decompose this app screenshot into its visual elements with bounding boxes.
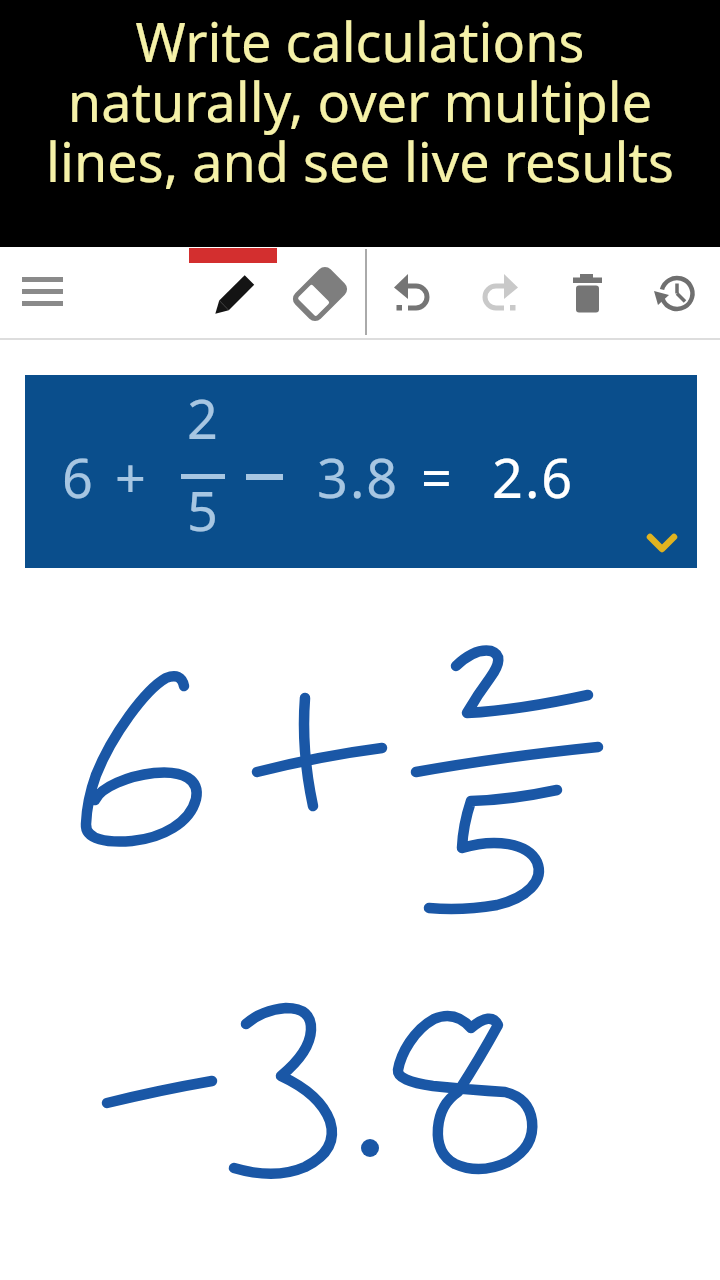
- staticText: 5: [187, 473, 220, 547]
- staticText: +: [115, 440, 148, 514]
- button[interactable]: [203, 263, 263, 323]
- staticText: =: [421, 440, 454, 514]
- button[interactable]: [647, 263, 707, 323]
- staticText: 2: [187, 381, 220, 455]
- button[interactable]: [14, 263, 72, 323]
- button[interactable]: [645, 530, 691, 560]
- button[interactable]: [290, 263, 350, 323]
- staticText: 6: [62, 440, 95, 514]
- staticText: 2.6: [492, 440, 575, 514]
- button[interactable]: 6: [25, 375, 697, 568]
- staticText: Write calculations naturally, over multi…: [46, 4, 674, 198]
- button[interactable]: [557, 263, 617, 323]
- button[interactable]: [382, 263, 442, 323]
- button[interactable]: [470, 263, 530, 323]
- staticText: 3.8: [317, 440, 400, 514]
